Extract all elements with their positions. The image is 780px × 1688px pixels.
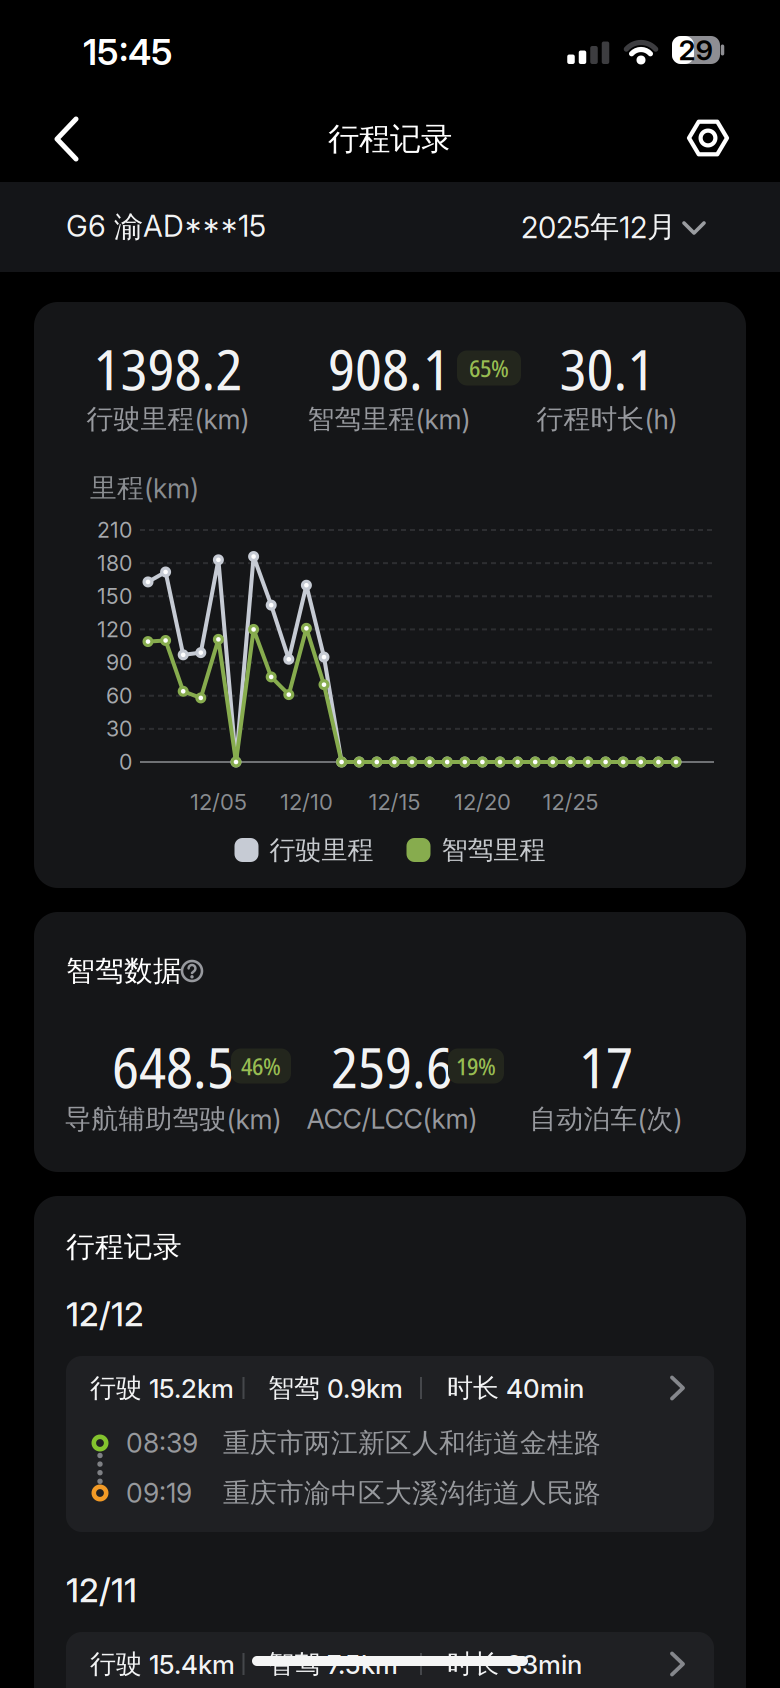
button[interactable]: About smart driving data: [181, 960, 203, 982]
staticText: 120: [97, 616, 132, 642]
staticText: 09:19: [126, 1477, 192, 1509]
staticText: 行驶 15.2km: [90, 1372, 234, 1404]
staticText: 17: [579, 1027, 633, 1105]
staticText: 180: [97, 550, 132, 576]
staticText: 12/20: [454, 789, 511, 815]
staticText: 行驶里程: [269, 834, 373, 866]
staticText: 时长 40min: [447, 1372, 584, 1404]
staticText: 08:39: [126, 1427, 198, 1459]
staticText: 29: [678, 33, 713, 67]
staticText: ACC/LCC(km): [306, 1103, 477, 1135]
staticText: 12/11: [66, 1570, 137, 1610]
staticText: 19%: [456, 1050, 496, 1082]
staticText: 重庆市渝中区大溪沟街道人民路: [223, 1476, 601, 1510]
staticText: 重庆市两江新区人和街道金桂路: [223, 1426, 601, 1460]
staticText: 行程时长(h): [536, 402, 677, 436]
staticText: 259.6: [331, 1027, 453, 1105]
staticText: 908.1: [328, 329, 450, 407]
staticText: G6 渝AD***15: [66, 208, 266, 245]
staticText: 30.1: [559, 329, 654, 407]
button[interactable]: Select vehicle: [66, 199, 306, 255]
staticText: 行程记录: [328, 119, 452, 159]
staticText: 行驶 15.4km: [90, 1648, 235, 1680]
staticText: 12/10: [280, 789, 333, 815]
staticText: 210: [97, 517, 132, 543]
staticText: 智驾 7.5km: [268, 1648, 398, 1680]
staticText: 65%: [469, 352, 509, 384]
staticText: 12/05: [190, 789, 247, 815]
staticText: 自动泊车(次): [529, 1102, 682, 1136]
staticText: 0: [119, 749, 132, 775]
staticText: 46%: [241, 1050, 281, 1082]
button[interactable]: Back: [44, 111, 88, 167]
staticText: 2025年12月: [521, 208, 676, 245]
staticText: 30: [106, 716, 132, 742]
staticText: 智驾数据: [66, 953, 182, 989]
staticText: 12/25: [542, 789, 598, 815]
button[interactable]: Trip on 12/11: [66, 1632, 714, 1688]
staticText: 648.5: [112, 1027, 234, 1105]
staticText: 行程记录: [66, 1229, 182, 1265]
staticText: 12/15: [368, 789, 420, 815]
staticText: 1398.2: [93, 329, 242, 407]
button[interactable]: Select month: [416, 197, 716, 257]
staticText: 智驾 0.9km: [268, 1372, 403, 1404]
button[interactable]: Settings: [689, 121, 727, 155]
staticText: 行驶里程(km): [86, 402, 249, 436]
staticText: 时长 33min: [447, 1648, 582, 1680]
button[interactable]: Trip on 12/12 08:39: [66, 1356, 714, 1532]
staticText: 智驾里程: [441, 834, 545, 866]
staticText: 导航辅助驾驶(km): [64, 1102, 281, 1136]
staticText: 里程(km): [90, 471, 199, 505]
staticText: 智驾里程(km): [307, 402, 470, 436]
staticText: 12/12: [66, 1294, 144, 1334]
staticText: 90: [106, 650, 132, 675]
staticText: 150: [97, 583, 132, 609]
staticText: 60: [106, 683, 132, 709]
staticText: 15:45: [83, 30, 173, 74]
